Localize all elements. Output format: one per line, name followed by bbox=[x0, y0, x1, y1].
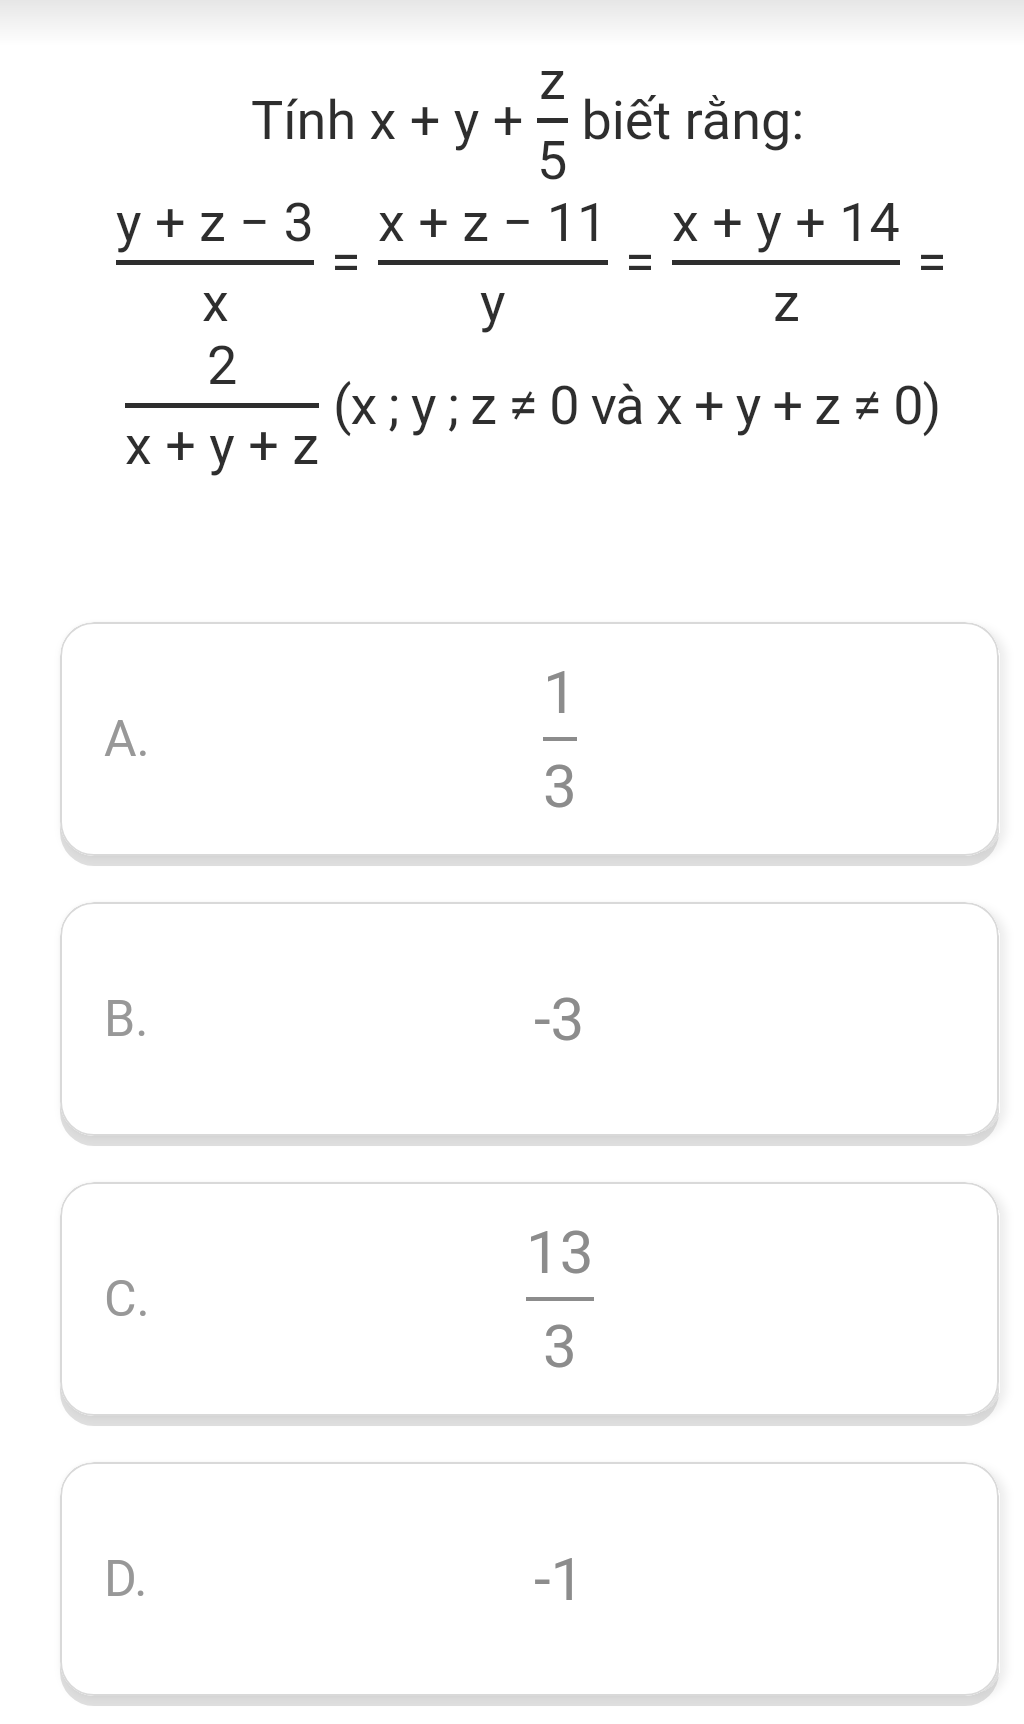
staticText: -1 bbox=[534, 1544, 585, 1614]
staticText: = bbox=[331, 231, 361, 294]
staticText: = bbox=[625, 231, 655, 294]
staticText: C. bbox=[104, 1270, 150, 1329]
staticText: x bbox=[202, 271, 229, 334]
staticText: -3 bbox=[534, 984, 585, 1054]
staticText: y + z − 3 bbox=[116, 191, 314, 254]
staticText: 3 bbox=[543, 751, 577, 821]
button[interactable] bbox=[60, 902, 999, 1136]
button[interactable] bbox=[60, 1182, 999, 1416]
staticText: z bbox=[539, 49, 566, 112]
staticText: D. bbox=[104, 1550, 148, 1609]
button[interactable] bbox=[60, 1462, 999, 1696]
staticText: biết rằng: bbox=[568, 89, 805, 152]
staticText: (x ; y ; z ≠ 0 và x + y + z ≠ 0) bbox=[333, 374, 941, 437]
staticText: 13 bbox=[526, 1217, 594, 1287]
staticText: 1 bbox=[543, 657, 577, 727]
staticText: x + y + z bbox=[125, 414, 319, 477]
staticText: x + z − 11 bbox=[378, 191, 608, 254]
staticText: z bbox=[773, 271, 800, 334]
staticText: Tính x + y + bbox=[251, 89, 537, 152]
staticText: 5 bbox=[537, 129, 568, 192]
button[interactable] bbox=[60, 622, 999, 856]
staticText: x + y + 14 bbox=[672, 191, 900, 254]
staticText: A. bbox=[104, 710, 150, 769]
staticText: y bbox=[480, 271, 506, 334]
staticText: 3 bbox=[543, 1311, 577, 1381]
staticText: B. bbox=[104, 990, 149, 1049]
staticText: 2 bbox=[207, 334, 238, 397]
staticText: = bbox=[917, 231, 947, 294]
